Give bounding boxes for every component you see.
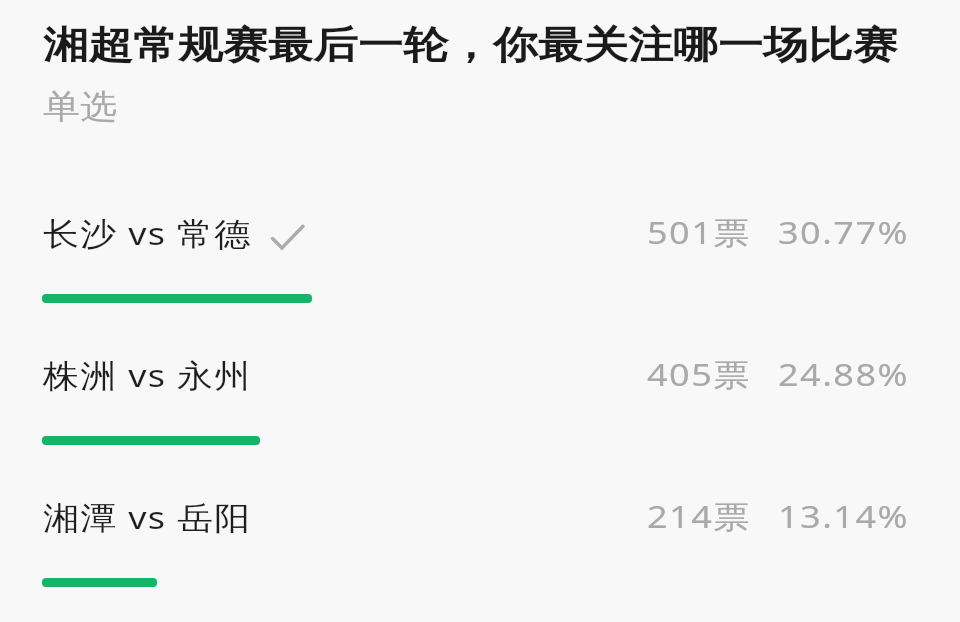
staticText: 株洲 vs 永州 (43, 354, 252, 397)
staticText: 长沙 vs 常德 (43, 212, 252, 255)
staticText: 湘超常规赛最后一轮，你最关注哪一场比赛 (43, 22, 898, 69)
button[interactable]: 株洲 vs 永州 (0, 342, 960, 472)
staticText: 24.88% (778, 353, 909, 396)
button[interactable]: 长沙 vs 常德 (0, 200, 960, 330)
staticText: 13.14% (778, 495, 909, 538)
staticText: 30.77% (778, 211, 909, 254)
staticText: 湘潭 vs 岳阳 (43, 496, 252, 539)
button[interactable]: 湘潭 vs 岳阳 (0, 484, 960, 614)
staticText: 214票 (647, 495, 751, 538)
staticText: 405票 (647, 353, 751, 396)
other: 已选择 (266, 220, 308, 262)
staticText: 单选 (43, 85, 117, 128)
staticText: 501票 (647, 211, 751, 254)
